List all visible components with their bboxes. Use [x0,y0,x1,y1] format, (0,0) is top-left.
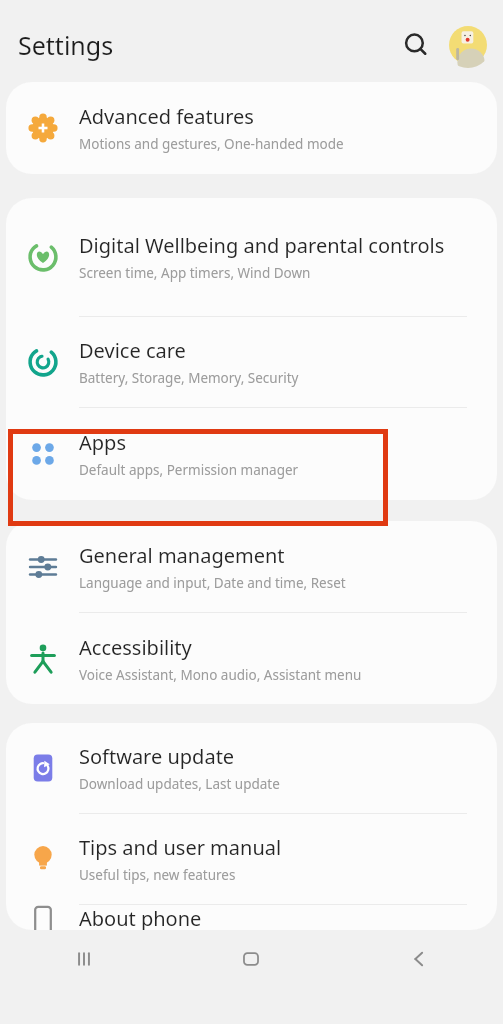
staticText: Apps [79,429,126,456]
button[interactable]: Recents [0,931,167,987]
staticText: Digital Wellbeing and parental controls [79,232,445,259]
staticText: Tips and user manual [79,834,282,861]
button[interactable]: Software update [6,723,497,813]
button[interactable]: General management [6,521,497,612]
button[interactable]: Digital Wellbeing and parental controls [6,198,497,316]
button[interactable]: Device care [6,317,497,407]
staticText: Screen time, App timers, Wind Down [79,264,311,282]
staticText: Software update [79,743,235,770]
staticText: Advanced features [79,103,254,130]
staticText: Default apps, Permission manager [79,461,299,479]
staticText: Voice Assistant, Mono audio, Assistant m… [79,666,362,684]
staticText: Motions and gestures, One-handed mode [79,135,344,153]
staticText: Device care [79,337,186,364]
staticText: Battery, Storage, Memory, Security [79,369,299,387]
button[interactable]: Accessibility [6,613,497,704]
staticText: General management [79,542,285,569]
staticText: Settings [18,28,114,62]
staticText: Download updates, Last update [79,775,280,793]
staticText: Useful tips, new features [79,866,236,884]
button[interactable]: Apps [6,408,497,500]
button[interactable]: Tips and user manual [6,814,497,904]
staticText: Language and input, Date and time, Reset [79,574,346,592]
staticText: About phone [79,905,202,930]
button[interactable]: Search [393,22,439,68]
button[interactable]: About phone [6,905,497,930]
button[interactable]: Advanced features [6,82,497,174]
button[interactable]: Back [335,931,503,987]
button[interactable]: Account profile [445,22,491,68]
button[interactable]: Home [167,931,335,987]
staticText: Accessibility [79,634,192,661]
